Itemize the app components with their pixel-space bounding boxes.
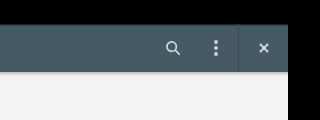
button[interactable]: Close: [239, 24, 288, 72]
button[interactable]: Search: [149, 24, 197, 72]
button[interactable]: More options: [192, 24, 239, 72]
